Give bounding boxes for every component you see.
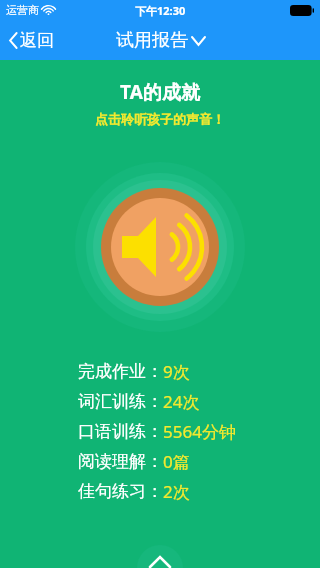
staticText: 24次 bbox=[163, 390, 200, 413]
staticText: 返回 bbox=[20, 30, 54, 51]
staticText: 5564分钟 bbox=[163, 420, 236, 443]
staticText: 2次 bbox=[163, 480, 190, 503]
staticText: 下午12:30 bbox=[135, 3, 186, 18]
staticText: 阅读理解： bbox=[78, 451, 163, 472]
staticText: TA的成就 bbox=[0, 79, 320, 105]
staticText: 9次 bbox=[163, 360, 190, 383]
staticText: 运营商 bbox=[6, 3, 39, 17]
staticText: 词汇训练： bbox=[78, 391, 163, 412]
button[interactable]: 试用报告 bbox=[110, 23, 211, 58]
button[interactable]: 播放孩子的声音 bbox=[73, 160, 247, 334]
staticText: 点击聆听孩子的声音！ bbox=[0, 111, 320, 127]
button[interactable]: 返回 bbox=[0, 24, 64, 57]
staticText: 0篇 bbox=[163, 450, 190, 473]
staticText: 口语训练： bbox=[78, 421, 163, 442]
staticText: 完成作业： bbox=[78, 361, 163, 382]
staticText: 试用报告 bbox=[116, 29, 188, 52]
staticText: 佳句练习： bbox=[78, 481, 163, 502]
button[interactable]: 返回顶部 bbox=[137, 545, 183, 568]
